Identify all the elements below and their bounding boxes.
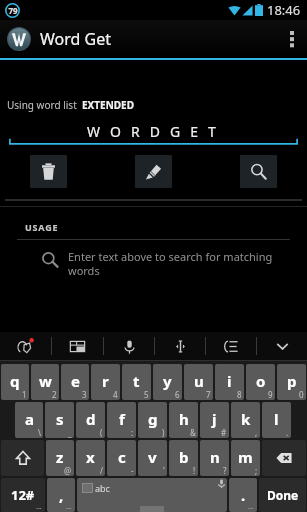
staticText: ?	[223, 465, 227, 476]
staticText: l	[274, 409, 279, 429]
button[interactable]: Hide keyboard	[257, 332, 307, 360]
button[interactable]: f	[107, 402, 136, 438]
button[interactable]: b	[169, 440, 198, 476]
button[interactable]: Search	[240, 155, 277, 188]
button[interactable]: Edit	[135, 155, 172, 188]
button[interactable]: t	[122, 364, 151, 400]
button[interactable]: n	[200, 440, 229, 476]
button[interactable]: u	[184, 364, 213, 400]
button[interactable]: c	[107, 440, 136, 476]
staticText: ...	[66, 502, 72, 512]
staticText: 12#	[11, 486, 35, 504]
staticText: :	[131, 427, 134, 438]
staticText: ,	[255, 427, 258, 438]
button[interactable]: Backspace	[262, 440, 306, 476]
staticText: a	[25, 409, 34, 429]
staticText: t	[133, 371, 140, 391]
button[interactable]: l	[262, 402, 291, 438]
button[interactable]: Voice input	[104, 332, 154, 360]
button[interactable]: x	[76, 440, 105, 476]
button[interactable]: Language	[52, 332, 103, 360]
staticText: @	[64, 465, 72, 476]
staticText: 8	[237, 389, 242, 400]
staticText: ...	[248, 502, 254, 512]
button[interactable]: w	[31, 364, 59, 400]
staticText: Done	[267, 487, 299, 503]
staticText: s	[56, 409, 64, 429]
button[interactable]: k	[231, 402, 260, 438]
button[interactable]: z	[46, 440, 74, 476]
staticText: .	[286, 427, 289, 438]
button[interactable]: m	[231, 440, 260, 476]
staticText: Using word list	[7, 98, 77, 112]
staticText: g	[148, 409, 158, 429]
staticText: ,	[59, 485, 64, 505]
staticText: 7	[206, 389, 211, 400]
staticText: 9	[268, 389, 273, 400]
button[interactable]: .	[229, 478, 257, 512]
button[interactable]: Shift	[1, 440, 44, 476]
button[interactable]: Space	[77, 478, 227, 512]
staticText: 5	[144, 389, 149, 400]
button[interactable]: ,	[47, 478, 75, 512]
staticText: /	[100, 465, 103, 476]
staticText: #	[221, 427, 227, 438]
staticText: r	[102, 371, 109, 391]
button[interactable]: p	[277, 364, 306, 400]
button[interactable]: j	[200, 402, 229, 438]
staticText: 2	[52, 389, 57, 400]
staticText: n	[210, 447, 220, 467]
staticText: i	[227, 371, 232, 391]
button[interactable]: h	[169, 402, 198, 438]
staticText: 0	[299, 389, 304, 400]
staticText: w	[39, 371, 52, 391]
staticText: e	[71, 371, 80, 391]
staticText: !	[193, 465, 196, 476]
staticText: USAGE	[25, 221, 59, 233]
staticText: z	[56, 447, 64, 467]
button[interactable]: o	[246, 364, 275, 400]
button[interactable]: Cursor control	[155, 332, 205, 360]
button[interactable]: g	[138, 402, 167, 438]
button[interactable]: s	[45, 402, 74, 438]
staticText: x	[86, 447, 95, 467]
staticText: 3	[82, 389, 87, 400]
button[interactable]: a	[15, 402, 43, 438]
button[interactable]: More options	[277, 20, 307, 58]
staticText: 1	[22, 389, 27, 400]
staticText: Word Get	[40, 28, 111, 50]
button[interactable]: i	[215, 364, 244, 400]
button[interactable]: q	[1, 364, 29, 400]
staticText: )	[162, 427, 165, 438]
staticText: 79	[8, 5, 18, 16]
staticText: 6	[175, 389, 180, 400]
button[interactable]: r	[91, 364, 120, 400]
button[interactable]: e	[61, 364, 89, 400]
button[interactable]: v	[138, 440, 167, 476]
staticText: ;	[255, 465, 258, 476]
staticText: 4	[113, 389, 118, 400]
staticText: 18:46	[267, 1, 301, 19]
staticText: ...	[36, 502, 42, 512]
staticText: y	[163, 371, 172, 391]
button[interactable]: y	[153, 364, 182, 400]
button[interactable]: d	[76, 402, 105, 438]
staticText: u	[194, 371, 204, 391]
button[interactable]: Clear	[30, 155, 67, 188]
staticText: p	[287, 371, 297, 391]
staticText: b	[179, 447, 189, 467]
staticText: -	[131, 465, 134, 476]
staticText: c	[118, 447, 126, 467]
button[interactable]: W O R D G E T	[9, 121, 298, 145]
staticText: .	[241, 485, 246, 505]
staticText: d	[86, 409, 96, 429]
staticText: q	[10, 371, 20, 391]
staticText: abc	[95, 482, 110, 494]
button[interactable]: Handwriting	[0, 332, 51, 360]
button[interactable]: 12#	[1, 478, 45, 512]
staticText: k	[241, 409, 251, 429]
button[interactable]: Done	[259, 478, 306, 512]
button[interactable]: Clipboard	[206, 332, 256, 360]
staticText: '	[163, 465, 165, 476]
staticText: Enter text above to search for matching …	[68, 249, 289, 278]
